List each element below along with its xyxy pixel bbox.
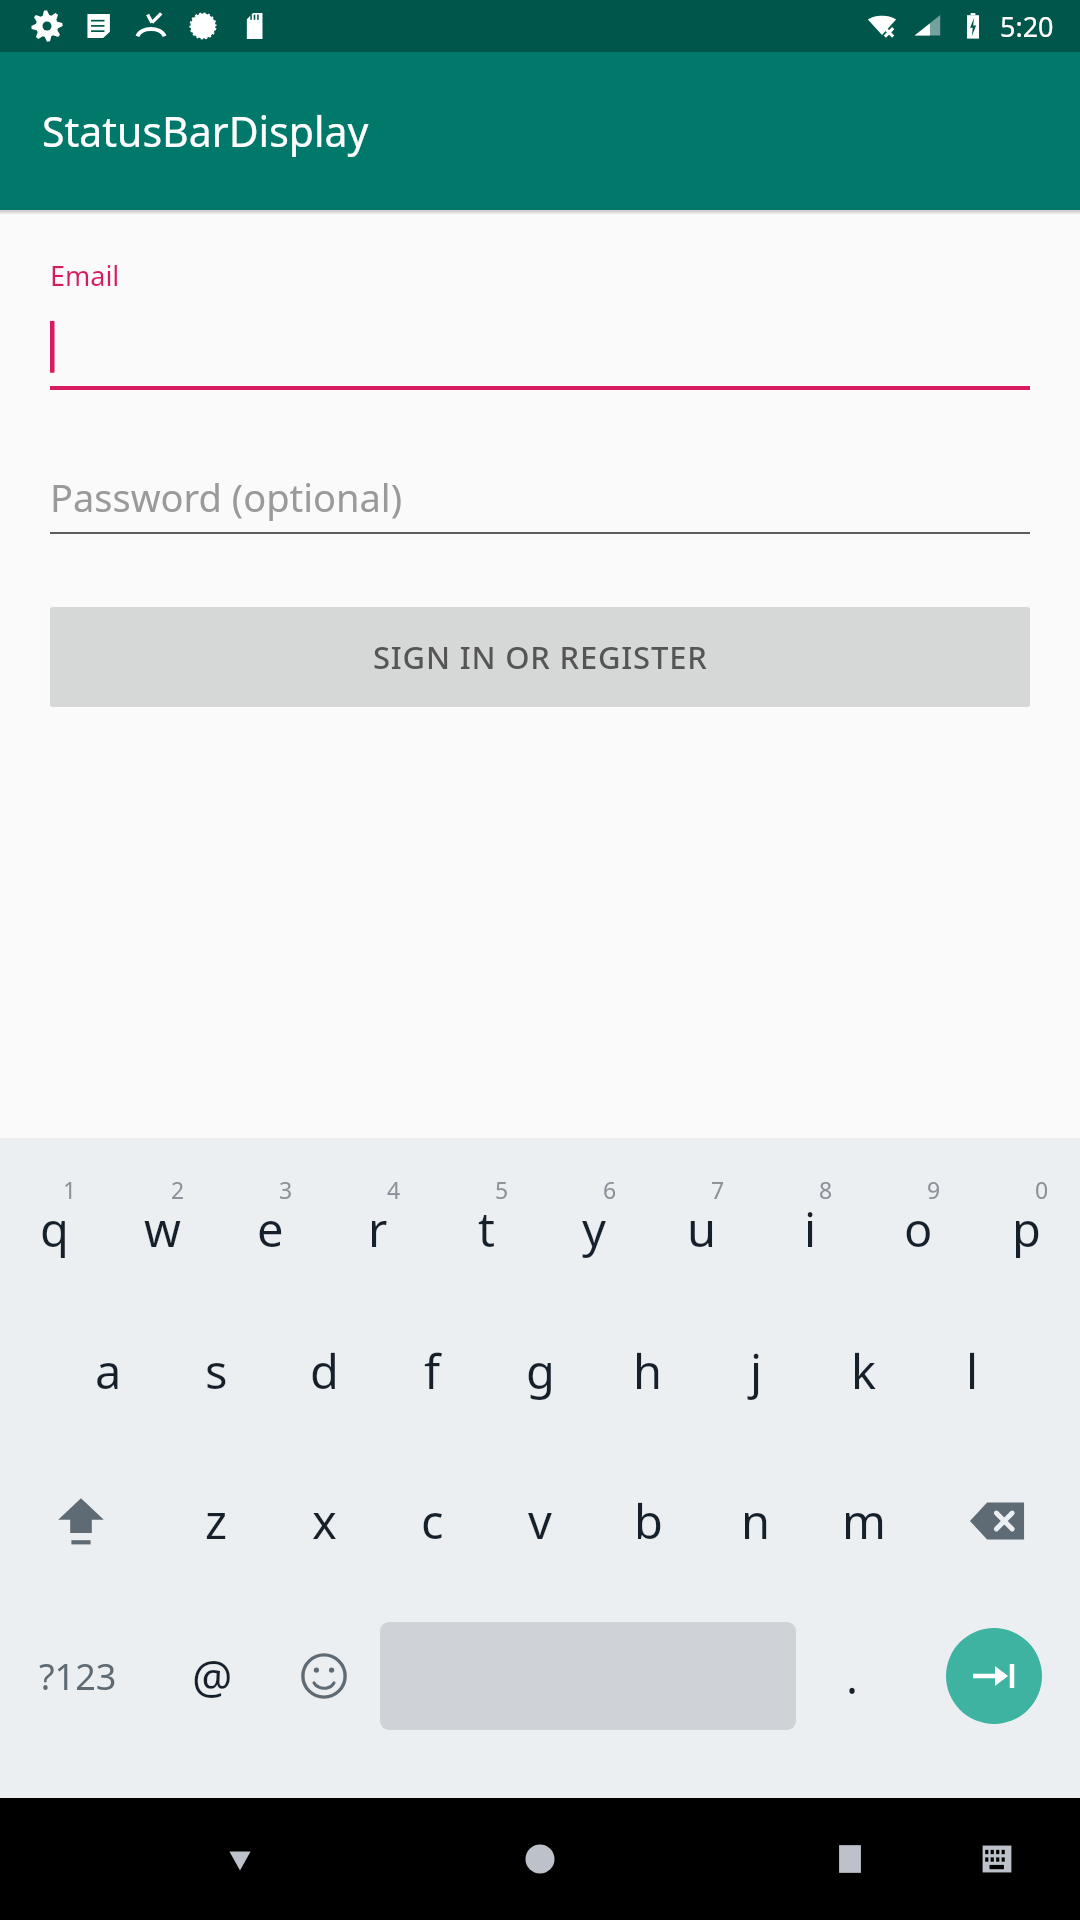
staticText: 4 bbox=[387, 1174, 401, 1205]
staticText: 5:20 bbox=[1000, 8, 1054, 45]
staticText: y bbox=[582, 1197, 606, 1261]
staticText: c bbox=[421, 1489, 444, 1553]
button[interactable]: 1 bbox=[0, 1146, 108, 1296]
staticText: z bbox=[205, 1489, 228, 1553]
button[interactable]: 8 bbox=[756, 1146, 864, 1296]
button[interactable]: 5 bbox=[432, 1146, 540, 1296]
staticText: StatusBarDisplay bbox=[42, 103, 369, 159]
button[interactable]: Hide keyboard bbox=[140, 1798, 340, 1920]
staticText: Password (optional) bbox=[50, 471, 403, 523]
staticText: 3 bbox=[279, 1174, 293, 1205]
button[interactable]: s bbox=[162, 1296, 270, 1446]
button[interactable]: Recents bbox=[770, 1798, 930, 1920]
staticText: w bbox=[144, 1197, 181, 1261]
staticText: ?123 bbox=[39, 1652, 117, 1701]
button[interactable]: Backspace bbox=[918, 1446, 1080, 1596]
staticText: u bbox=[687, 1197, 717, 1261]
staticText: SIGN IN OR REGISTER bbox=[373, 636, 708, 678]
staticText: b bbox=[634, 1489, 663, 1553]
staticText: 5 bbox=[495, 1174, 509, 1205]
staticText: v bbox=[528, 1489, 552, 1553]
staticText: m bbox=[842, 1489, 886, 1553]
staticText: k bbox=[851, 1339, 877, 1403]
button[interactable]: Emoji bbox=[268, 1596, 380, 1756]
button[interactable]: ?123 bbox=[0, 1596, 156, 1756]
button[interactable]: f bbox=[378, 1296, 486, 1446]
button[interactable]: Next bbox=[908, 1596, 1080, 1756]
button[interactable]: z bbox=[162, 1446, 270, 1596]
staticText: 2 bbox=[171, 1174, 185, 1205]
staticText: j bbox=[750, 1339, 763, 1403]
button[interactable]: 2 bbox=[108, 1146, 216, 1296]
button[interactable]: c bbox=[378, 1446, 486, 1596]
staticText: d bbox=[310, 1339, 339, 1403]
button[interactable]: 3 bbox=[216, 1146, 324, 1296]
button[interactable]: 4 bbox=[324, 1146, 432, 1296]
button[interactable]: k bbox=[810, 1296, 918, 1446]
button[interactable]: Home bbox=[440, 1798, 640, 1920]
button[interactable]: v bbox=[486, 1446, 594, 1596]
staticText: l bbox=[966, 1339, 979, 1403]
button[interactable]: d bbox=[270, 1296, 378, 1446]
staticText: e bbox=[257, 1197, 284, 1261]
button[interactable]: @ bbox=[156, 1596, 268, 1756]
staticText: @ bbox=[192, 1646, 233, 1707]
button[interactable]: 0 bbox=[972, 1146, 1080, 1296]
staticText: o bbox=[904, 1197, 933, 1261]
button[interactable]: b bbox=[594, 1446, 702, 1596]
staticText: q bbox=[40, 1197, 69, 1261]
staticText: a bbox=[95, 1339, 122, 1403]
staticText: 0 bbox=[1035, 1174, 1049, 1205]
staticText: 1 bbox=[63, 1174, 77, 1205]
staticText: n bbox=[741, 1489, 771, 1553]
button[interactable]: x bbox=[270, 1446, 378, 1596]
staticText: h bbox=[633, 1339, 663, 1403]
staticText: 9 bbox=[927, 1174, 941, 1205]
button[interactable]: 6 bbox=[540, 1146, 648, 1296]
staticText: g bbox=[526, 1339, 555, 1403]
staticText: t bbox=[478, 1197, 495, 1261]
staticText: p bbox=[1012, 1197, 1041, 1261]
staticText: 8 bbox=[819, 1174, 833, 1205]
staticText: Email bbox=[50, 257, 120, 294]
button[interactable]: l bbox=[918, 1296, 1026, 1446]
button[interactable]: 7 bbox=[648, 1146, 756, 1296]
button[interactable]: m bbox=[810, 1446, 918, 1596]
button[interactable]: g bbox=[486, 1296, 594, 1446]
staticText: 7 bbox=[711, 1174, 725, 1205]
button[interactable]: Shift bbox=[0, 1446, 162, 1596]
staticText: r bbox=[368, 1197, 388, 1261]
button[interactable]: . bbox=[796, 1596, 908, 1756]
button[interactable]: n bbox=[702, 1446, 810, 1596]
staticText: 6 bbox=[603, 1174, 617, 1205]
button[interactable]: Switch keyboard bbox=[932, 1798, 1062, 1920]
button[interactable] bbox=[50, 316, 1030, 386]
staticText: x bbox=[312, 1489, 337, 1553]
button[interactable]: 9 bbox=[864, 1146, 972, 1296]
button[interactable]: Password (optional) bbox=[50, 462, 1030, 532]
button[interactable]: j bbox=[702, 1296, 810, 1446]
staticText: . bbox=[846, 1646, 859, 1707]
button[interactable]: SIGN IN OR REGISTER bbox=[50, 607, 1030, 707]
button[interactable]: h bbox=[594, 1296, 702, 1446]
button[interactable]: a bbox=[54, 1296, 162, 1446]
staticText: i bbox=[804, 1197, 817, 1261]
staticText: s bbox=[205, 1339, 228, 1403]
staticText: f bbox=[424, 1339, 441, 1403]
